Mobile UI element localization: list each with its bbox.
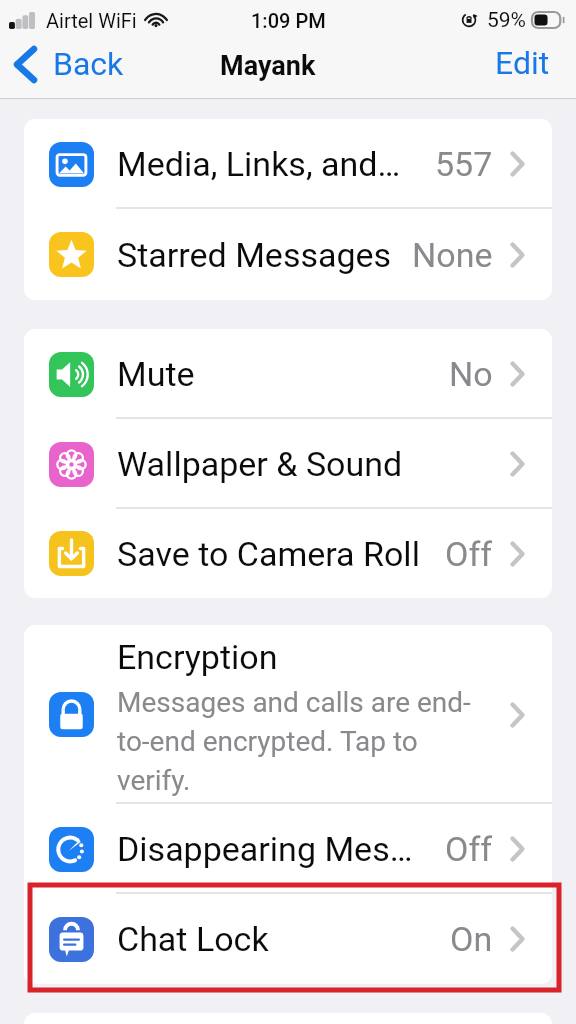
staticText: On [450, 919, 493, 959]
staticText: None [412, 235, 493, 275]
button[interactable]: Disappearing Mes… [24, 804, 552, 894]
staticText: Starred Messages [117, 235, 392, 275]
button[interactable]: Edit [477, 36, 576, 90]
staticText: Save to Camera Roll [117, 534, 420, 574]
staticText: Messages and calls are end-to-end encryp… [117, 686, 479, 797]
button[interactable]: Media, Links, and… [24, 119, 552, 209]
staticText: Edit [495, 44, 550, 82]
button[interactable]: Encryption [24, 625, 552, 804]
staticText: 59% [487, 8, 526, 33]
other: Battery 59 percent [531, 11, 565, 29]
button[interactable]: Chat Lock [24, 894, 552, 984]
staticText: Mute [117, 354, 195, 394]
staticText: No [449, 354, 493, 394]
other: Rotation lock [462, 12, 478, 28]
button[interactable]: Starred Messages [24, 209, 552, 300]
staticText: Off [445, 829, 493, 869]
staticText: Wallpaper & Sound [117, 444, 403, 484]
staticText: Disappearing Mes… [117, 829, 413, 869]
staticText: Chat Lock [117, 919, 269, 959]
button[interactable]: Mute [24, 329, 552, 419]
staticText: 1:09 PM [251, 9, 326, 32]
staticText: Media, Links, and… [117, 144, 401, 184]
staticText: Off [445, 534, 493, 574]
button[interactable]: Save to Camera Roll [24, 509, 552, 598]
staticText: Airtel WiFi [46, 9, 137, 32]
staticText: Mayank [220, 50, 316, 82]
button[interactable]: Wallpaper & Sound [24, 419, 552, 509]
staticText: Back [53, 45, 124, 83]
staticText: 557 [435, 144, 493, 184]
staticText: Encryption [117, 637, 278, 677]
button[interactable]: Back [0, 40, 134, 88]
